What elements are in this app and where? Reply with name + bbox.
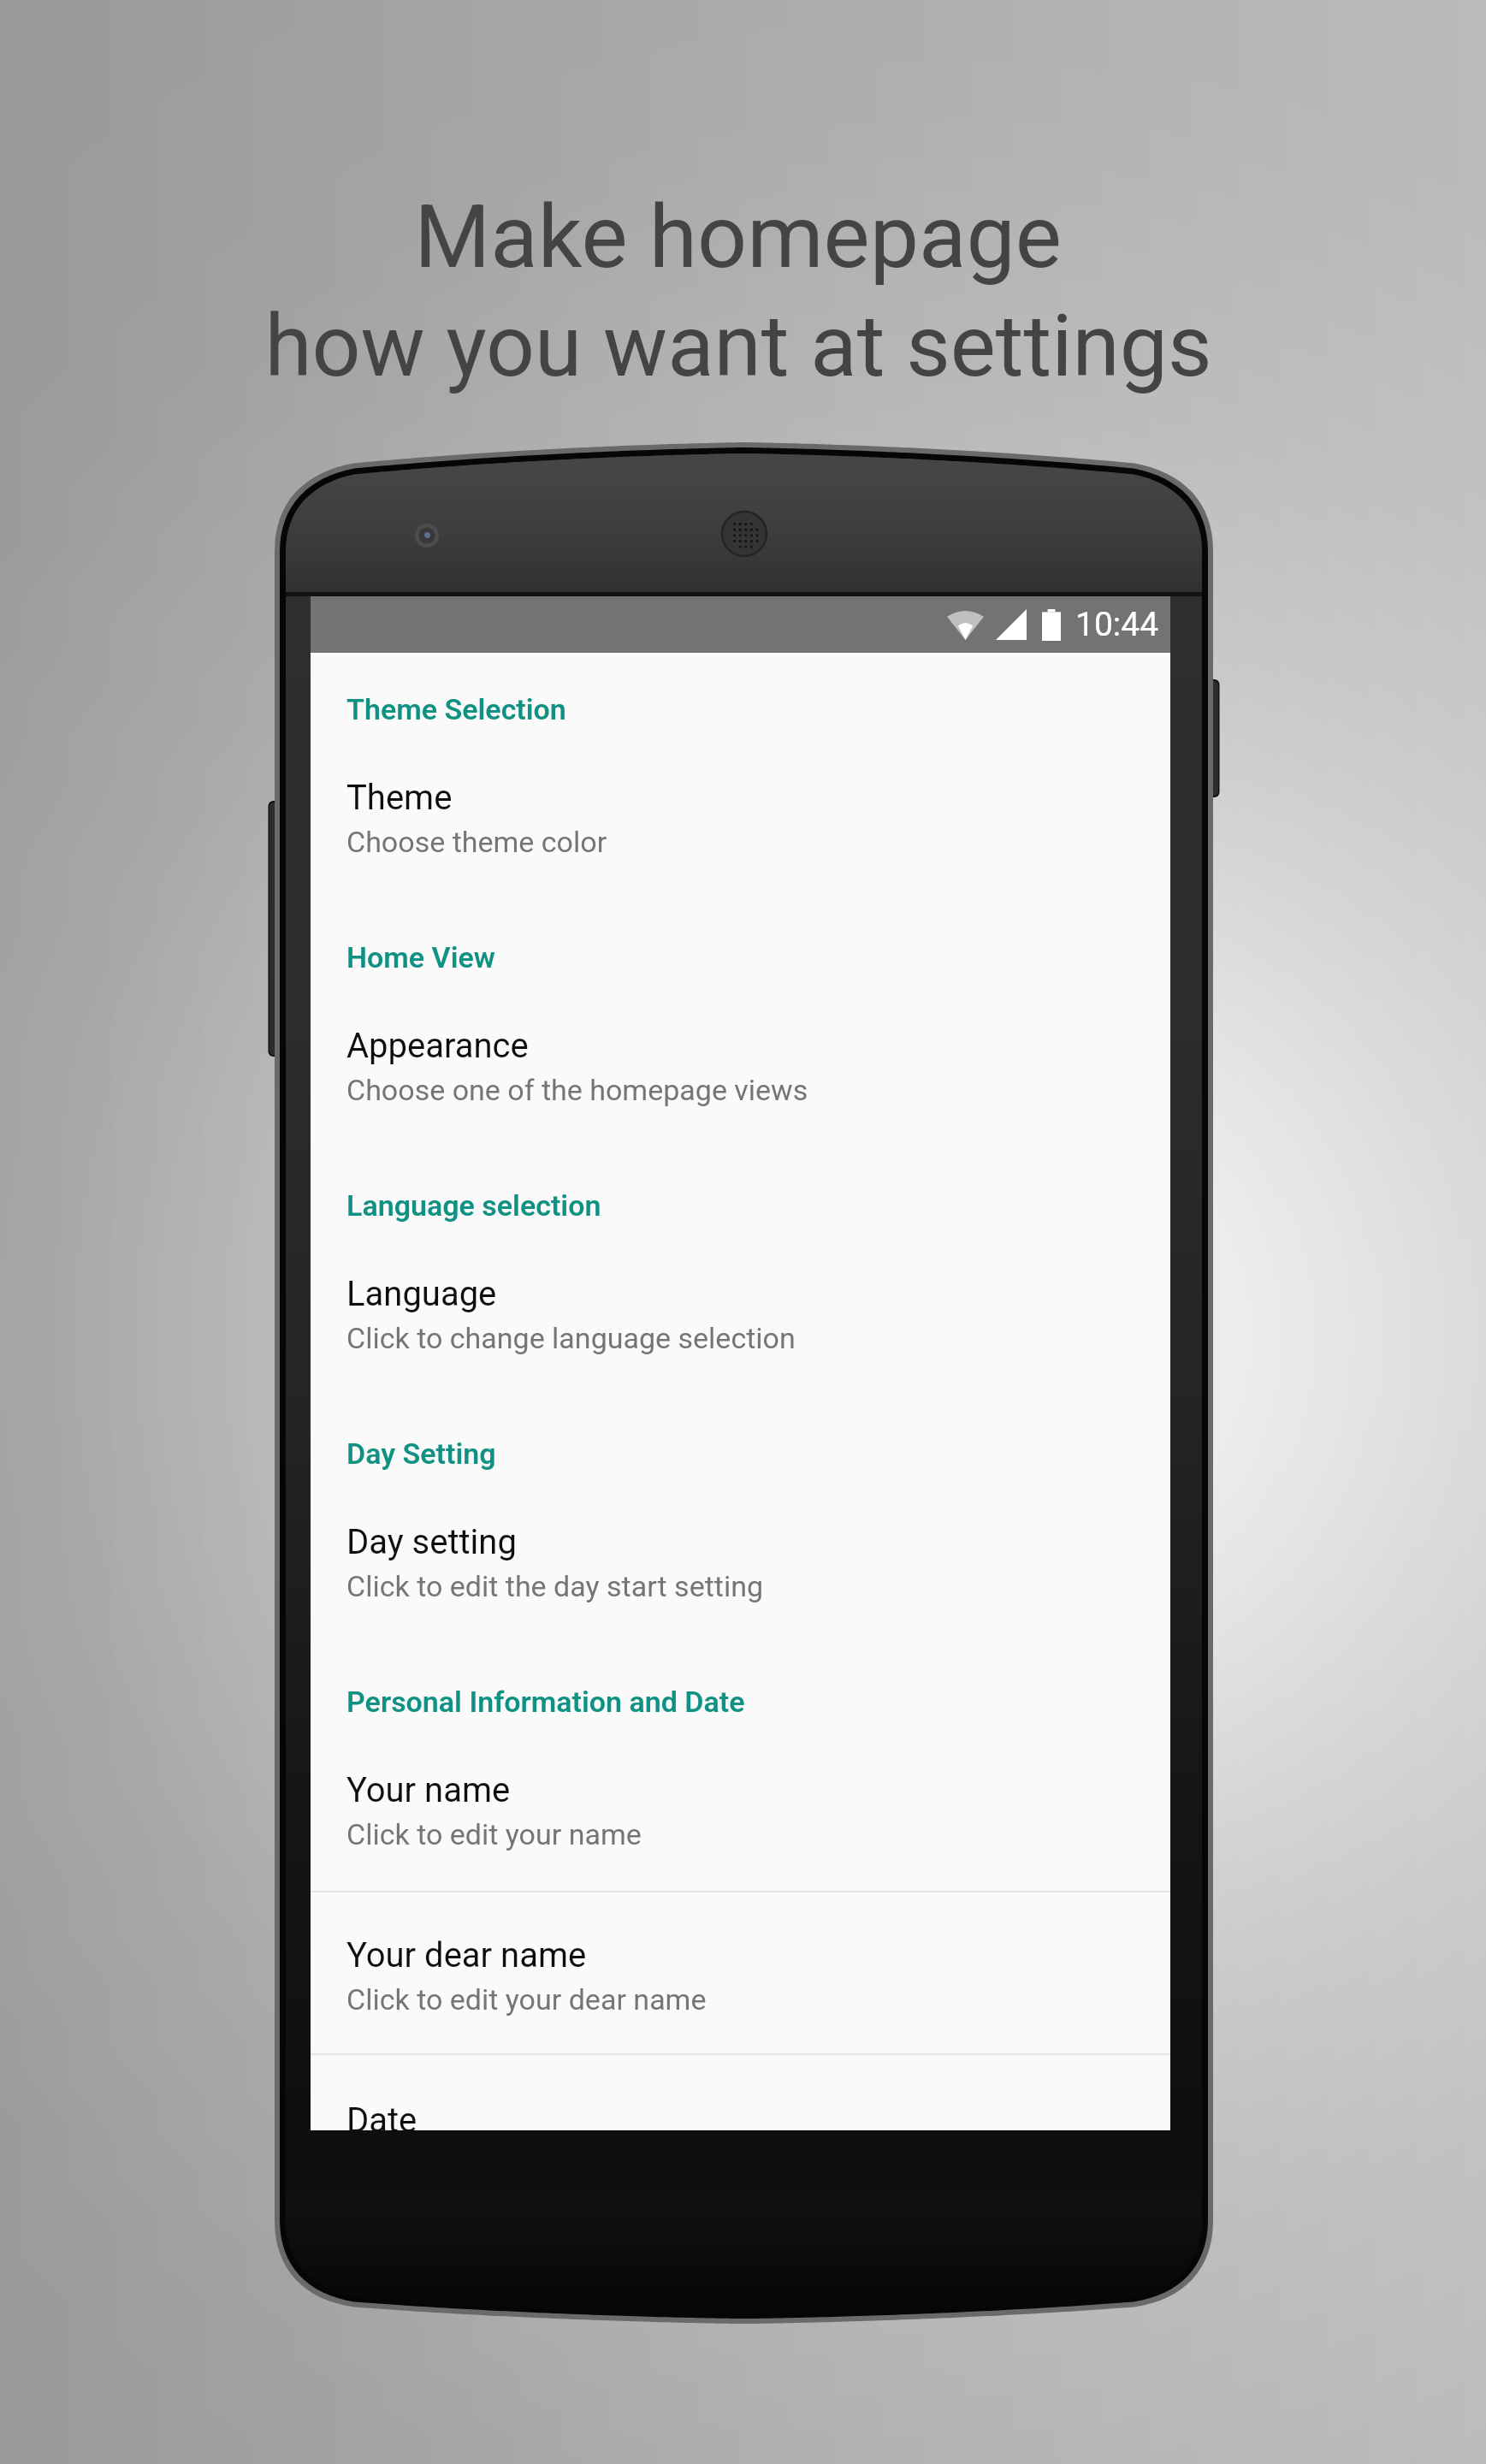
button[interactable]: Day setting [311,1507,1170,1645]
staticText: Theme Selection [346,692,566,726]
staticText: Your name [346,1770,511,1810]
other: Battery [1042,609,1061,641]
staticText: Personal Information and Date [346,1685,745,1719]
staticText: Language selection [346,1188,601,1223]
staticText: Day Setting [346,1436,496,1471]
staticText: Click to edit the day start setting [346,1569,764,1603]
staticText: Day setting [346,1522,517,1562]
staticText: 10:44 [1075,605,1159,644]
other: Signal [996,609,1027,640]
staticText: Click to edit your dear name [346,1982,707,2017]
staticText: Language [346,1274,497,1314]
staticText: Make homepage [414,186,1062,288]
staticText: Click to change language selection [346,1321,796,1355]
staticText: Your dear name [346,1935,587,1975]
button[interactable]: Theme [311,762,1170,901]
staticText: Home View [346,940,495,974]
other: Wi-Fi [947,610,984,640]
button[interactable]: Your dear name [311,1892,1170,2053]
staticText: Date [346,2100,417,2130]
staticText: how you want at settings [264,296,1212,396]
button[interactable]: Appearance [311,1010,1170,1149]
button[interactable]: Your name [311,1755,1170,1893]
staticText: Choose theme color [346,825,607,859]
button[interactable]: Language [311,1259,1170,1397]
staticText: Click to edit your name [346,1817,642,1851]
staticText: Theme [346,778,453,818]
button[interactable]: Date [311,2055,1170,2130]
staticText: Appearance [346,1026,529,1066]
staticText: Choose one of the homepage views [346,1073,808,1107]
